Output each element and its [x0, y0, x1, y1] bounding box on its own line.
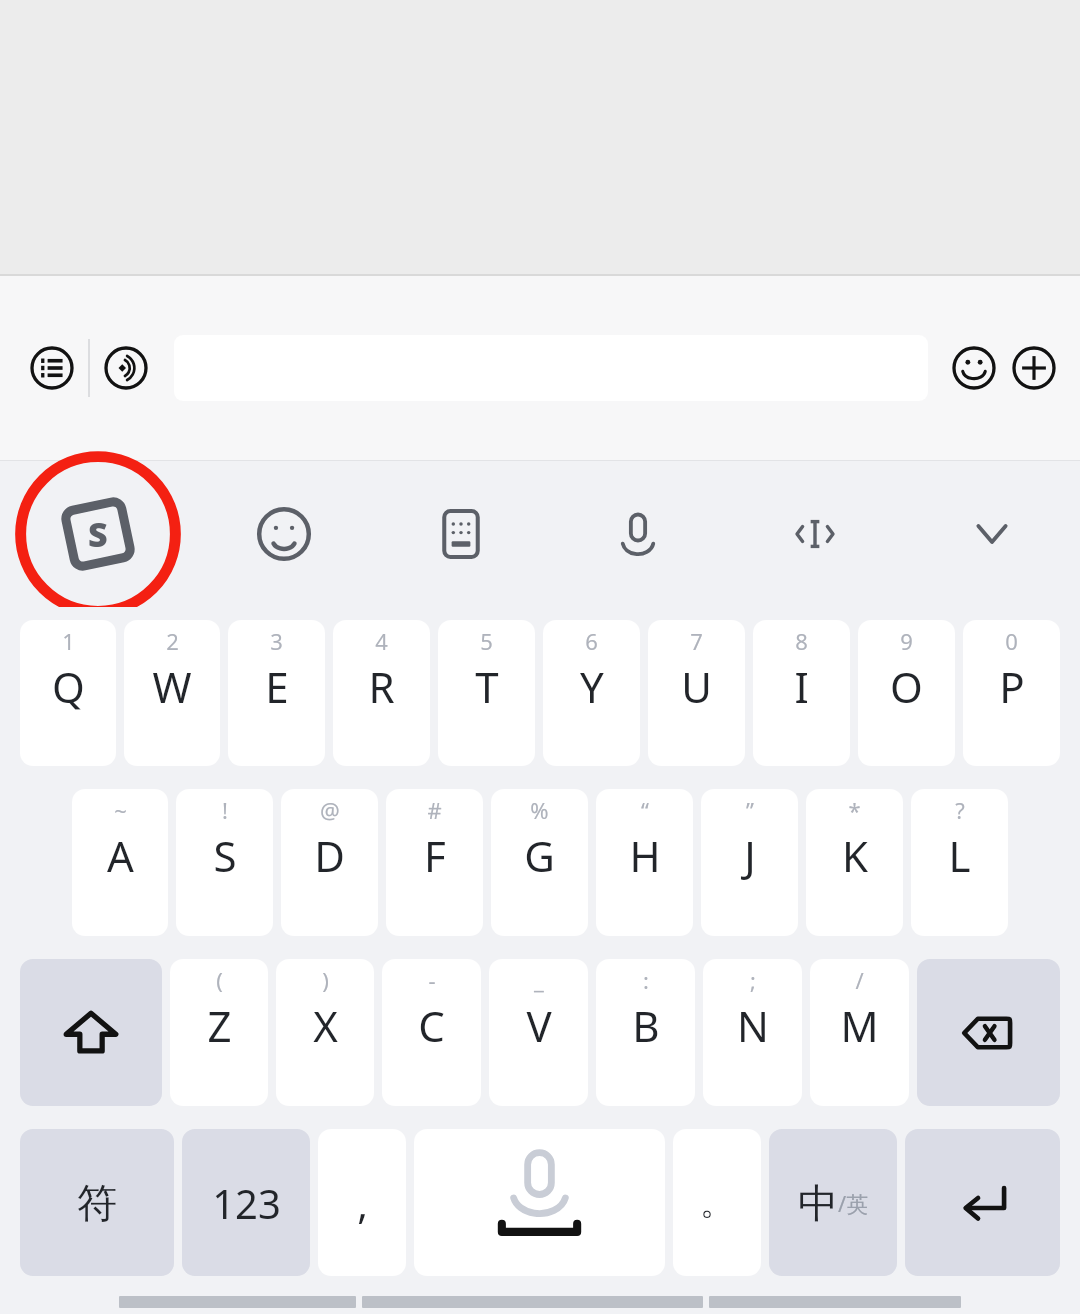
staticText: 4 [375, 626, 388, 656]
staticText: Y [580, 658, 604, 715]
button[interactable]: _ [489, 959, 588, 1106]
button[interactable]: * [806, 789, 903, 936]
staticText: O [890, 658, 923, 715]
staticText: L [948, 827, 971, 884]
button[interactable]: 5 [438, 620, 535, 766]
staticText: N [737, 997, 769, 1054]
button[interactable]: # [386, 789, 483, 936]
staticText: # [427, 795, 442, 825]
button[interactable]: % [491, 789, 588, 936]
staticText: ~ [114, 795, 127, 825]
staticText: D [314, 827, 345, 884]
button[interactable]: Keyboard layout [372, 461, 549, 607]
button[interactable]: Emoji [196, 461, 372, 607]
button[interactable]: Add [1012, 346, 1056, 390]
button[interactable]: 9 [858, 620, 955, 766]
staticText: ? [955, 795, 965, 825]
staticText: 。 [700, 1181, 734, 1224]
button[interactable]: Emoji [952, 346, 996, 390]
button[interactable]: Shift [20, 959, 162, 1106]
staticText: M [840, 997, 879, 1054]
staticText: 6 [585, 626, 598, 656]
staticText: G [524, 827, 555, 884]
staticText: W [152, 658, 192, 715]
button[interactable]: ” [701, 789, 798, 936]
staticText: 1 [62, 626, 75, 656]
staticText: ” [746, 795, 754, 825]
button[interactable]: 3 [228, 620, 325, 766]
staticText: ) [322, 965, 329, 995]
staticText: B [632, 997, 660, 1054]
staticText: F [424, 827, 446, 884]
staticText: “ [641, 795, 649, 825]
button[interactable]: 123 [182, 1129, 310, 1276]
staticText: : [643, 965, 649, 995]
staticText: /英 [838, 1188, 869, 1218]
button[interactable]: @ [281, 789, 378, 936]
staticText: U [681, 658, 712, 715]
button[interactable]: 2 [124, 620, 220, 766]
staticText: @ [320, 795, 340, 825]
staticText: 中 [798, 1178, 838, 1228]
staticText: _ [534, 965, 544, 995]
button[interactable]: ? [911, 789, 1008, 936]
staticText: K [842, 827, 868, 884]
staticText: T [475, 658, 499, 715]
staticText: 符 [77, 1178, 117, 1228]
button[interactable]: 8 [753, 620, 850, 766]
button[interactable]: 符 [20, 1129, 174, 1276]
staticText: P [999, 658, 1025, 715]
staticText: I [794, 658, 809, 715]
staticText: H [629, 827, 661, 884]
staticText: Z [207, 997, 232, 1054]
staticText: % [530, 795, 549, 825]
button[interactable]: Backspace [917, 959, 1060, 1106]
staticText: E [265, 658, 289, 715]
button[interactable]: 7 [648, 620, 745, 766]
button[interactable]: : [596, 959, 695, 1106]
button[interactable]: 6 [543, 620, 640, 766]
button[interactable]: 中 [769, 1129, 897, 1276]
staticText: R [368, 658, 395, 715]
staticText: J [744, 827, 756, 884]
button[interactable]: ~ [72, 789, 168, 936]
button[interactable]: 。 [673, 1129, 761, 1276]
button[interactable]: ) [276, 959, 374, 1106]
staticText: 7 [690, 626, 703, 656]
staticText: X [313, 997, 338, 1054]
staticText: S [88, 511, 108, 557]
button[interactable]: / [810, 959, 909, 1106]
staticText: Q [52, 658, 85, 715]
staticText: V [526, 997, 552, 1054]
button[interactable]: - [382, 959, 481, 1106]
staticText: ; [750, 965, 756, 995]
button[interactable]: ! [176, 789, 273, 936]
button[interactable]: , [318, 1129, 406, 1276]
button[interactable]: 0 [963, 620, 1060, 766]
staticText: / [855, 965, 864, 995]
button[interactable]: Edit cursor [726, 461, 903, 607]
button[interactable]: Hide keyboard [903, 461, 1080, 607]
staticText: 0 [1005, 626, 1018, 656]
button[interactable]: “ [596, 789, 693, 936]
button[interactable]: Sound [104, 346, 148, 390]
button[interactable]: Voice input [549, 461, 726, 607]
button[interactable]: ( [170, 959, 268, 1106]
staticText: 123 [212, 1176, 281, 1230]
button[interactable]: Enter [905, 1129, 1060, 1276]
staticText: ( [216, 965, 223, 995]
button[interactable]: ; [703, 959, 802, 1106]
button[interactable]: 1 [20, 620, 116, 766]
button[interactable]: 4 [333, 620, 430, 766]
staticText: 5 [480, 626, 493, 656]
button[interactable]: Space, voice input [414, 1129, 665, 1276]
staticText: ! [222, 795, 228, 825]
button[interactable]: Sogou input settings [0, 461, 196, 607]
staticText: * [848, 795, 861, 825]
button[interactable]: List [30, 346, 74, 390]
staticText: , [357, 1176, 368, 1230]
